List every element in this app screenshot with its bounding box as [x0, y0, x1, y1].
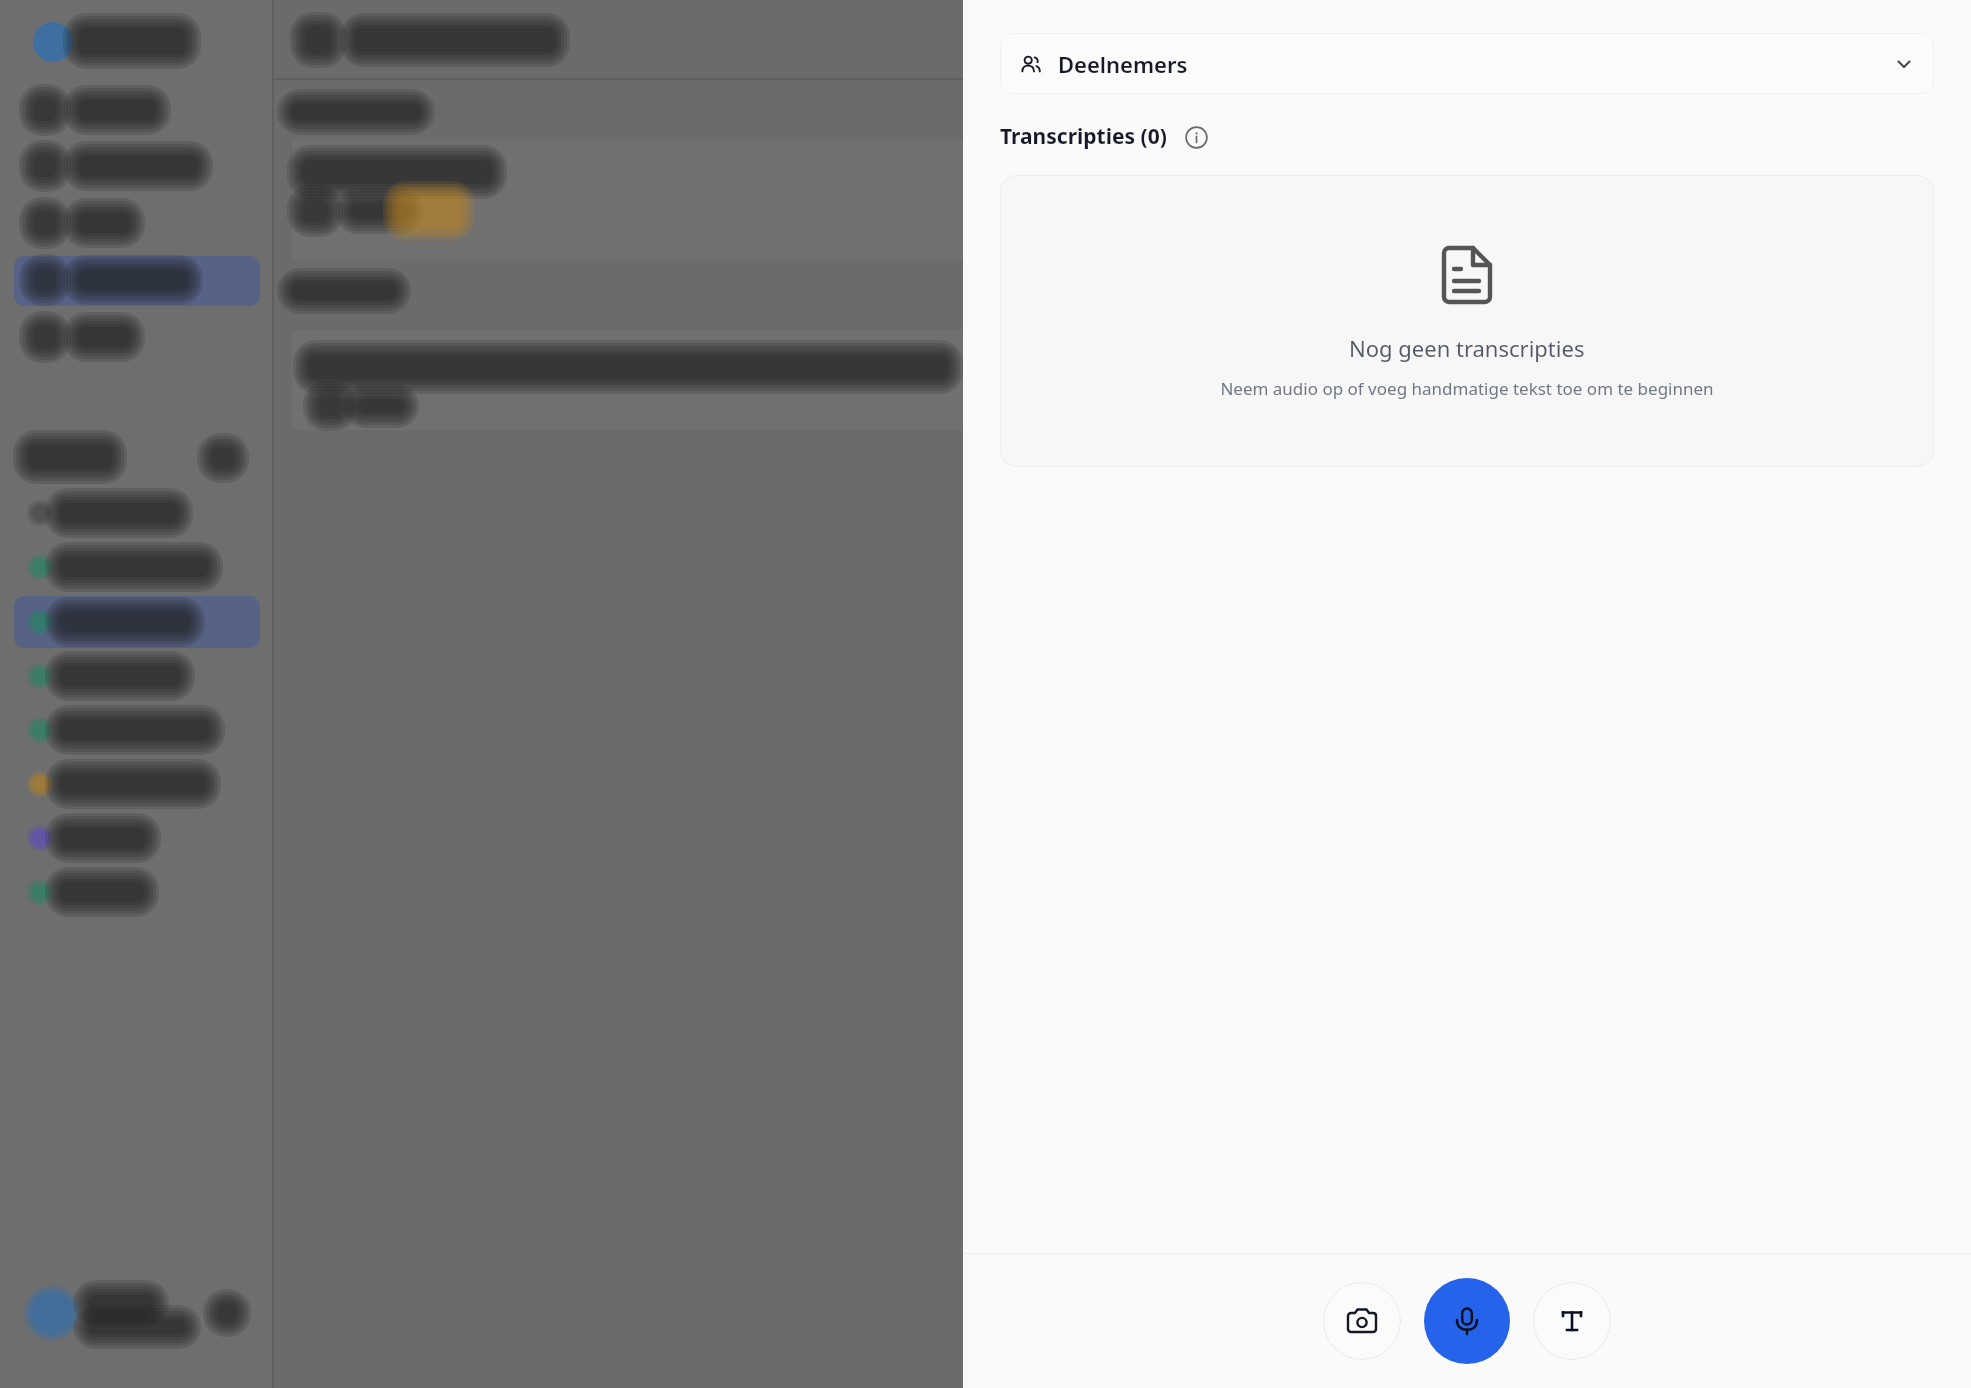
button[interactable]: Record audio — [1424, 1278, 1510, 1364]
staticText: Deelnemers — [1058, 49, 1188, 79]
staticText: Neem audio op of voeg handmatige tekst t… — [1220, 377, 1714, 400]
button[interactable]: Deelnemers — [1000, 33, 1934, 94]
staticText: Transcripties (0) — [1000, 122, 1167, 151]
button[interactable]: Info — [1183, 124, 1209, 150]
button[interactable]: Add text — [1533, 1282, 1611, 1360]
button[interactable]: Camera — [1323, 1282, 1401, 1360]
staticText: Nog geen transcripties — [1349, 333, 1585, 363]
